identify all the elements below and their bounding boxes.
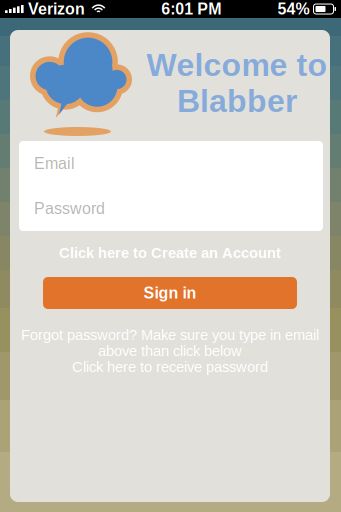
button[interactable]: Click here to Create an Account: [10, 244, 330, 262]
staticText: above than click below: [98, 343, 242, 359]
staticText: Click here to Create an Account: [59, 245, 281, 261]
staticText: Click here to receive password: [72, 359, 268, 375]
button[interactable]: Sign in: [43, 277, 297, 309]
button[interactable]: Click here to receive password: [11, 359, 329, 375]
staticText: Forgot password? Make sure you type in e…: [21, 327, 319, 343]
staticText: Blabber: [177, 83, 297, 119]
staticText: Password: [34, 200, 105, 217]
staticText: 54%: [277, 0, 309, 18]
staticText: Sign in: [143, 284, 196, 302]
staticText: Email: [34, 155, 75, 172]
staticText: Welcome to: [146, 47, 327, 83]
button[interactable]: Email: [19, 141, 323, 186]
staticText: Verizon: [28, 0, 85, 18]
staticText: 6:01 PM: [161, 0, 221, 18]
button[interactable]: Password: [19, 186, 323, 231]
